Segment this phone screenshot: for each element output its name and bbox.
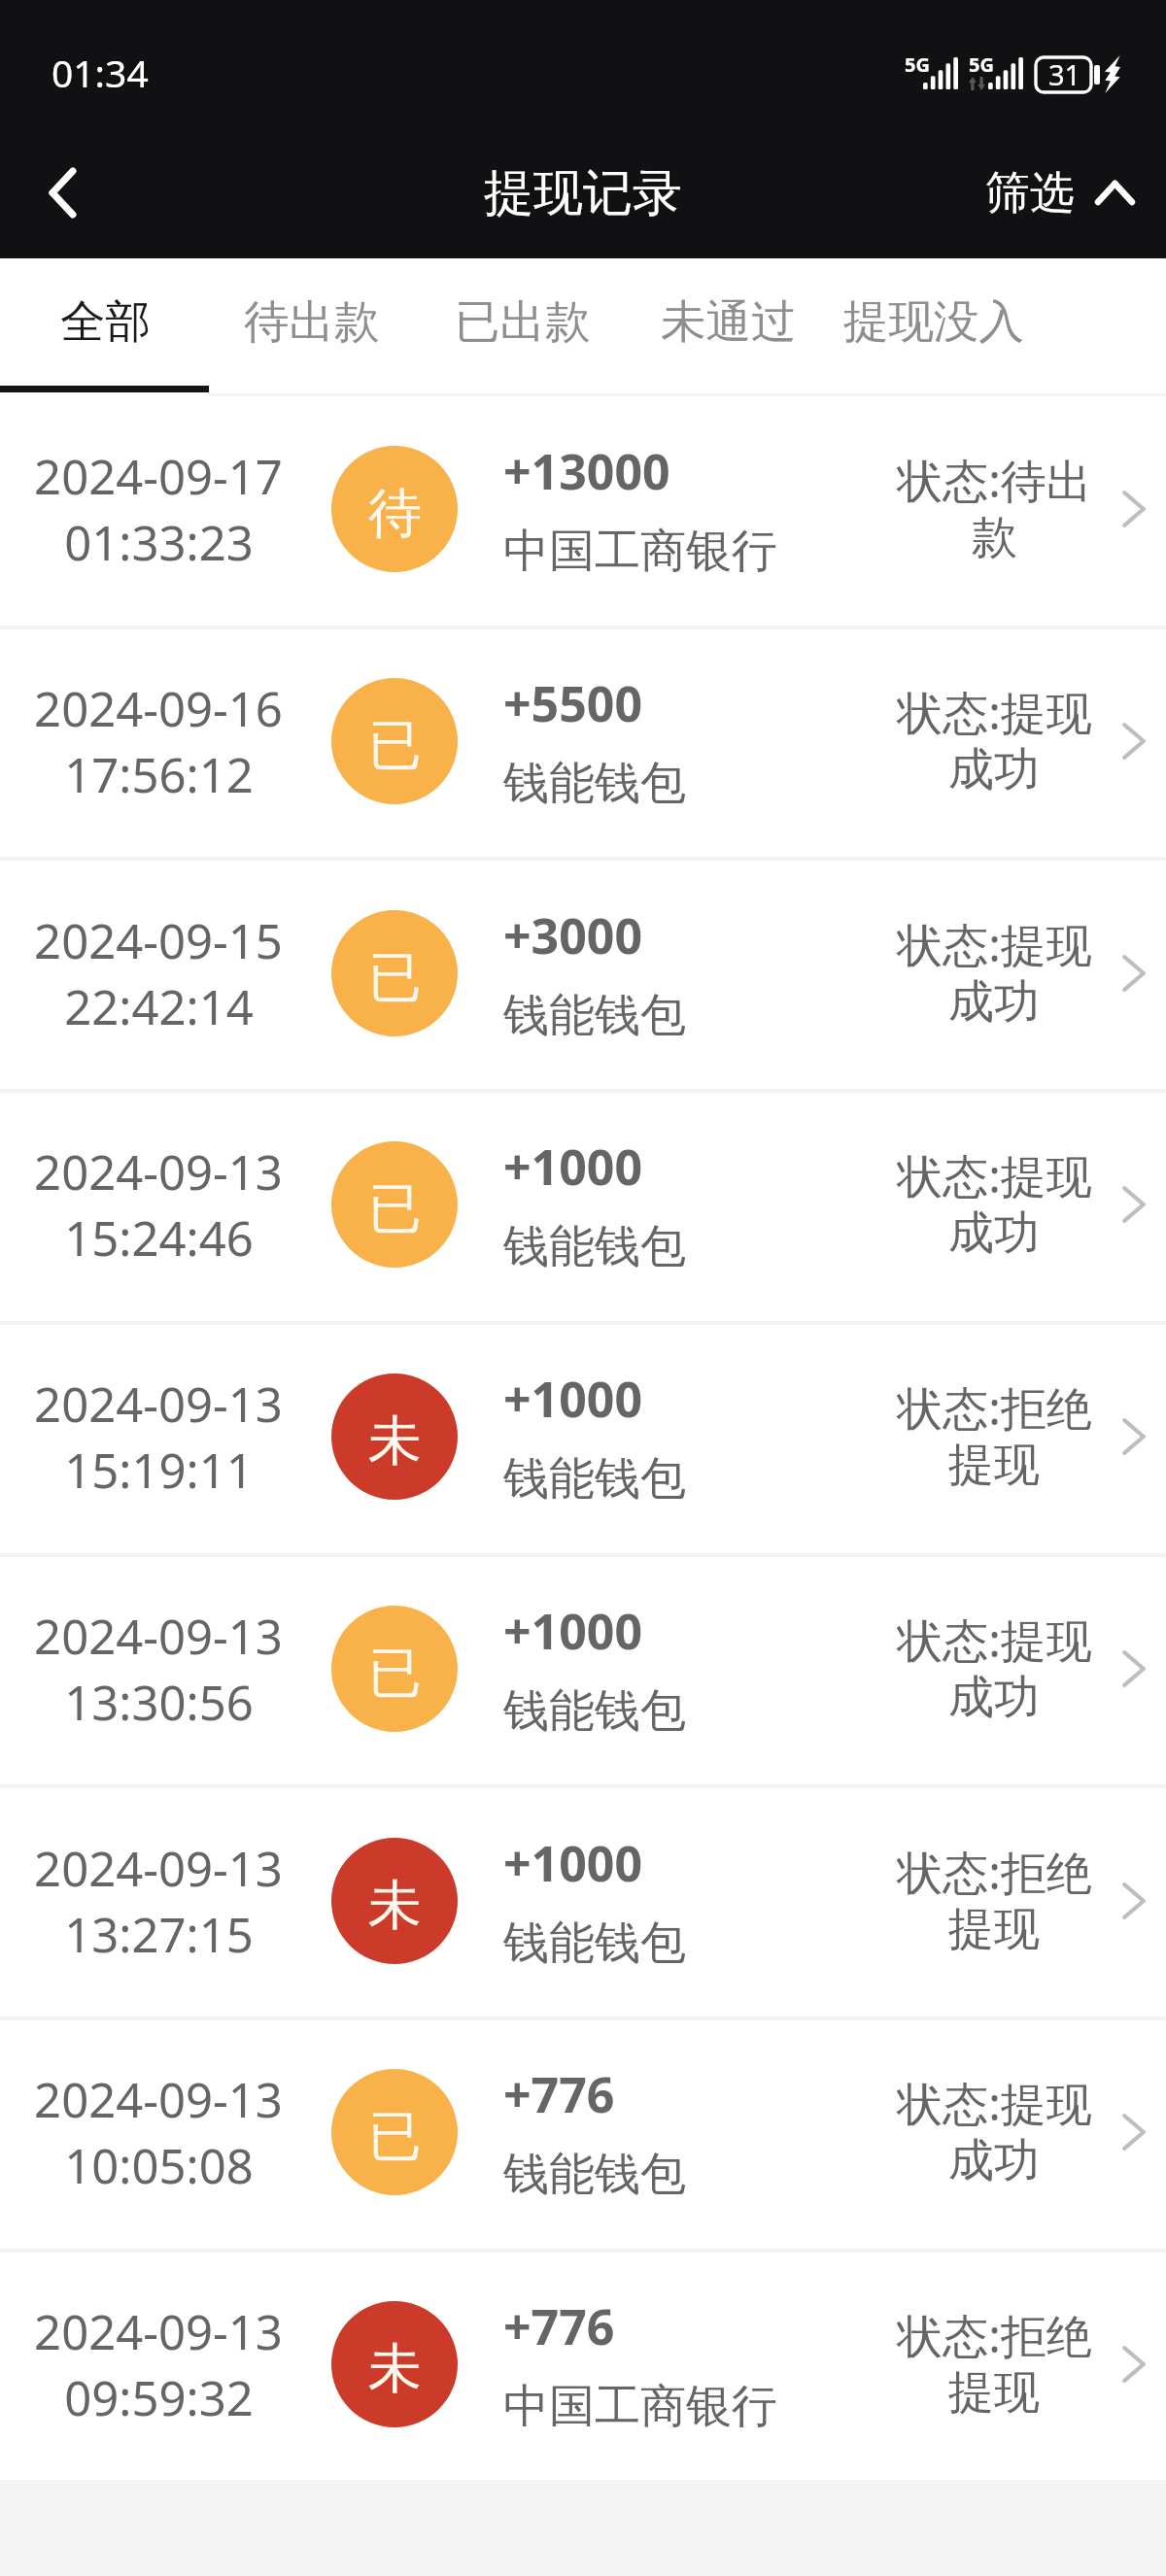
button[interactable]: 2024-09-13 <box>0 1320 1166 1552</box>
staticText: 状态:拒绝 <box>897 1841 1092 1903</box>
button[interactable]: 2024-09-13 <box>0 1088 1166 1320</box>
staticText: 全部 <box>60 293 151 351</box>
staticText: 状态:拒绝 <box>897 2304 1092 2366</box>
staticText: +3000 <box>503 902 642 968</box>
staticText: 2024-09-13 <box>34 1139 283 1204</box>
staticText: 提现 <box>948 1901 1040 1958</box>
staticText: 成功 <box>948 741 1040 798</box>
button[interactable]: 已出款 <box>430 258 614 386</box>
staticText: 01:33:23 <box>64 510 254 575</box>
staticText: 款 <box>972 509 1017 566</box>
staticText: 10:05:08 <box>64 2133 254 2198</box>
staticText: 2024-09-13 <box>34 1836 283 1901</box>
staticText: 提现记录 <box>484 162 682 224</box>
staticText: 状态:提现 <box>897 1144 1092 1206</box>
staticText: 钱能钱包 <box>503 1682 686 1740</box>
staticText: 未 <box>368 1407 422 1474</box>
staticText: 待 <box>368 480 422 547</box>
staticText: 17:56:12 <box>64 742 254 807</box>
button[interactable]: 2024-09-13 <box>0 2016 1166 2248</box>
staticText: 2024-09-13 <box>34 2299 283 2364</box>
staticText: 22:42:14 <box>64 974 254 1039</box>
staticText: 5G <box>905 51 930 78</box>
staticText: 状态:拒绝 <box>897 1376 1092 1439</box>
staticText: +776 <box>503 2061 615 2127</box>
staticText: 已 <box>368 1640 422 1707</box>
staticText: +1000 <box>503 1366 642 1432</box>
staticText: 13:30:56 <box>64 1670 254 1735</box>
staticText: 状态:待出 <box>897 449 1092 511</box>
button[interactable]: 全部 <box>36 258 174 386</box>
staticText: 5G <box>969 51 994 78</box>
staticText: 成功 <box>948 1669 1040 1726</box>
staticText: 2024-09-13 <box>34 1372 283 1437</box>
staticText: 成功 <box>948 2132 1040 2189</box>
staticText: +1000 <box>503 1134 642 1200</box>
button[interactable]: 2024-09-15 <box>0 857 1166 1089</box>
staticText: 中国工商银行 <box>503 2378 777 2435</box>
staticText: 钱能钱包 <box>503 2146 686 2203</box>
staticText: 状态:提现 <box>897 913 1092 975</box>
staticText: 钱能钱包 <box>503 987 686 1044</box>
staticText: 成功 <box>948 1204 1040 1262</box>
staticText: 已 <box>368 944 422 1011</box>
staticText: 09:59:32 <box>64 2365 254 2430</box>
staticText: 01:34 <box>51 47 149 98</box>
staticText: 已出款 <box>455 293 591 351</box>
button[interactable]: 2024-09-13 <box>0 1552 1166 1784</box>
staticText: 筛选 <box>985 165 1075 221</box>
staticText: 15:24:46 <box>64 1205 254 1271</box>
staticText: 提现 <box>948 2364 1040 2422</box>
staticText: 成功 <box>948 973 1040 1031</box>
staticText: 未 <box>368 2335 422 2402</box>
button[interactable]: Back <box>0 127 126 258</box>
staticText: 待出款 <box>244 293 380 351</box>
button[interactable]: 2024-09-13 <box>0 1784 1166 2017</box>
staticText: 2024-09-13 <box>34 2067 283 2132</box>
button[interactable]: 提现没入 <box>819 258 1048 386</box>
staticText: 15:19:11 <box>64 1438 254 1503</box>
staticText: +776 <box>503 2293 615 2359</box>
staticText: +13000 <box>503 438 670 504</box>
staticText: 提现没入 <box>843 293 1024 351</box>
button[interactable]: 筛选 <box>962 127 1166 258</box>
staticText: 提现 <box>948 1437 1040 1494</box>
staticText: 2024-09-13 <box>34 1604 283 1669</box>
staticText: 状态:提现 <box>897 2072 1092 2134</box>
staticText: 钱能钱包 <box>503 1450 686 1508</box>
button[interactable]: 待出款 <box>220 258 403 386</box>
staticText: 状态:提现 <box>897 681 1092 743</box>
button[interactable]: 2024-09-17 <box>0 392 1166 625</box>
staticText: 未通过 <box>661 293 797 351</box>
button[interactable]: 2024-09-16 <box>0 625 1166 857</box>
button[interactable]: 2024-09-13 <box>0 2248 1166 2480</box>
staticText: 钱能钱包 <box>503 755 686 812</box>
staticText: +1000 <box>503 1830 642 1896</box>
staticText: 未 <box>368 1872 422 1939</box>
staticText: 31 <box>1048 55 1081 93</box>
staticText: 已 <box>368 2103 422 2170</box>
staticText: 钱能钱包 <box>503 1915 686 1972</box>
staticText: 已 <box>368 712 422 779</box>
staticText: 已 <box>368 1175 422 1242</box>
staticText: 钱能钱包 <box>503 1218 686 1275</box>
staticText: +1000 <box>503 1598 642 1664</box>
staticText: 状态:提现 <box>897 1609 1092 1671</box>
staticText: 2024-09-16 <box>34 676 283 741</box>
staticText: 2024-09-17 <box>34 444 283 509</box>
button[interactable]: 未通过 <box>636 258 820 386</box>
staticText: 中国工商银行 <box>503 523 777 580</box>
staticText: 2024-09-15 <box>34 908 283 973</box>
staticText: +5500 <box>503 670 642 736</box>
staticText: 13:27:15 <box>64 1902 254 1967</box>
